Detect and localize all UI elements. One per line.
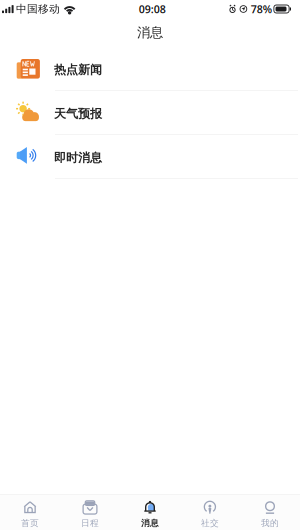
button[interactable]: 热点新闻 <box>0 47 300 91</box>
staticText: 消息 <box>141 517 159 528</box>
button[interactable]: 即时消息 <box>0 135 300 179</box>
button[interactable]: 消息 <box>120 493 180 530</box>
button[interactable]: 我的 <box>240 493 300 530</box>
button[interactable]: 日程 <box>60 493 120 530</box>
button[interactable]: 天气预报 <box>0 91 300 135</box>
staticText: 首页 <box>21 517 39 528</box>
staticText: 78% <box>251 2 272 16</box>
staticText: 消息 <box>137 24 163 41</box>
staticText: 热点新闻 <box>54 62 102 77</box>
staticText: 09:08 <box>139 2 166 16</box>
staticText: 我的 <box>261 517 279 528</box>
button[interactable]: 首页 <box>0 493 60 530</box>
staticText: 社交 <box>201 517 219 528</box>
button[interactable]: 社交 <box>180 493 240 530</box>
staticText: 中国移动 <box>16 2 60 15</box>
staticText: 日程 <box>81 517 99 528</box>
staticText: 即时消息 <box>54 150 102 165</box>
staticText: 天气预报 <box>54 106 102 121</box>
